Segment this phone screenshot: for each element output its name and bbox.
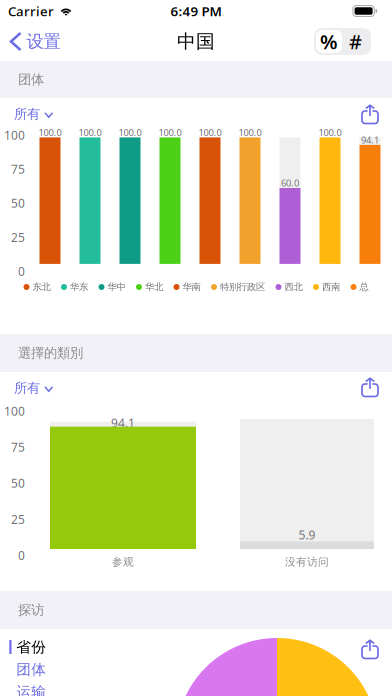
staticText: 所有: [14, 106, 40, 122]
staticText: 所有: [14, 380, 40, 396]
staticText: #: [349, 28, 362, 55]
staticText: 100.0: [238, 126, 261, 139]
staticText: 75: [11, 439, 25, 455]
staticText: 50: [11, 195, 25, 211]
staticText: 东北: [32, 281, 50, 293]
staticText: 25: [11, 229, 25, 245]
button[interactable]: Share: [355, 370, 385, 403]
staticText: 华南: [182, 281, 200, 293]
staticText: 探访: [18, 602, 44, 618]
staticText: 5.9: [298, 527, 315, 543]
staticText: 94.1: [111, 415, 135, 431]
staticText: 团体: [16, 660, 46, 678]
staticText: 60.0: [281, 177, 299, 189]
staticText: 選擇的類別: [18, 345, 83, 361]
staticText: 总: [359, 281, 368, 293]
staticText: %: [320, 28, 338, 55]
button[interactable]: Share: [355, 632, 385, 665]
staticText: 94.1: [361, 134, 379, 146]
button[interactable]: 设置: [0, 26, 60, 57]
staticText: 西南: [322, 281, 340, 293]
button[interactable]: 所有: [14, 103, 66, 125]
staticText: 运输: [16, 683, 46, 696]
button[interactable]: %: [316, 30, 342, 53]
staticText: 50: [11, 475, 25, 491]
staticText: 100.0: [158, 126, 181, 139]
button[interactable]: Share: [355, 97, 385, 130]
staticText: 华北: [145, 281, 163, 293]
button[interactable]: 运输: [9, 681, 71, 696]
button[interactable]: 省份: [9, 636, 71, 658]
staticText: 0: [18, 263, 25, 279]
staticText: 100: [4, 403, 25, 419]
staticText: 100.0: [38, 126, 61, 139]
button[interactable]: 团体: [9, 658, 71, 681]
button[interactable]: #: [342, 30, 369, 53]
staticText: 25: [11, 511, 25, 527]
staticText: 省份: [16, 638, 46, 656]
staticText: 中国: [177, 30, 215, 53]
staticText: 6:49 PM: [170, 2, 221, 20]
staticText: Carrier: [8, 2, 54, 20]
staticText: 100.0: [118, 126, 141, 139]
staticText: 西北: [284, 281, 302, 293]
staticText: 100.0: [318, 126, 341, 139]
button[interactable]: 所有: [14, 377, 66, 399]
staticText: 团体: [18, 71, 44, 88]
staticText: 100: [4, 127, 25, 143]
staticText: 参观: [112, 555, 134, 568]
staticText: 华中: [107, 281, 125, 293]
staticText: 100.0: [198, 126, 221, 139]
staticText: 0: [18, 547, 25, 563]
staticText: 75: [11, 161, 25, 177]
staticText: 华东: [70, 281, 88, 293]
staticText: 特别行政区: [220, 281, 265, 293]
staticText: 100.0: [78, 126, 101, 139]
staticText: 没有访问: [285, 555, 329, 568]
staticText: 设置: [26, 31, 60, 52]
